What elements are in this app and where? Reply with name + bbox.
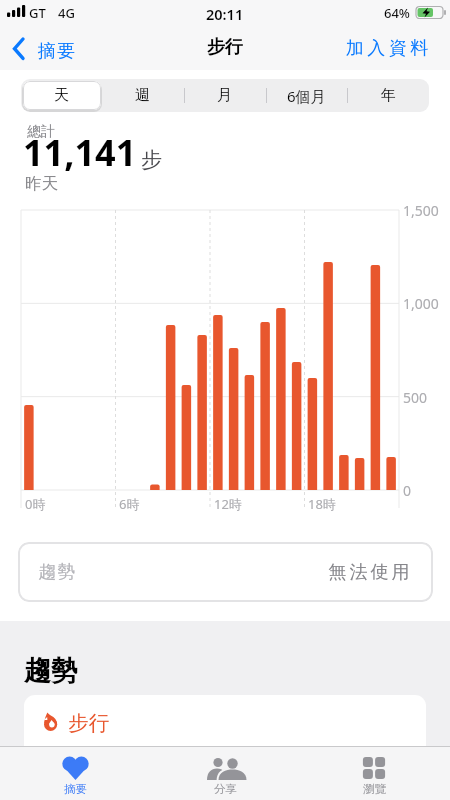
- button[interactable]: 月: [183, 79, 265, 112]
- staticText: 加入資料: [344, 37, 430, 60]
- staticText: 摘要: [64, 782, 87, 796]
- staticText: 週: [135, 86, 150, 105]
- staticText: 0時: [25, 495, 46, 513]
- button[interactable]: [24, 695, 426, 747]
- staticText: 6個月: [287, 86, 326, 106]
- staticText: 64%: [384, 4, 410, 22]
- button[interactable]: 6個月: [265, 79, 347, 112]
- staticText: 趨勢: [38, 561, 76, 584]
- staticText: 分享: [214, 782, 237, 796]
- staticText: 4G: [58, 4, 75, 22]
- staticText: 摘要: [37, 40, 76, 63]
- button[interactable]: 摘要: [15, 747, 136, 800]
- button[interactable]: 年: [347, 79, 429, 112]
- button[interactable]: 天: [21, 79, 102, 112]
- staticText: 11,141: [23, 128, 137, 177]
- staticText: 6時: [119, 495, 140, 513]
- staticText: 無法使用: [327, 561, 411, 584]
- staticText: 12時: [214, 495, 242, 513]
- button[interactable]: 摘要: [6, 34, 76, 64]
- staticText: 18時: [308, 495, 336, 513]
- staticText: 0: [403, 481, 412, 500]
- staticText: 瀏覽: [363, 782, 386, 796]
- button[interactable]: 瀏覽: [314, 747, 435, 800]
- staticText: 天: [54, 86, 69, 105]
- button[interactable]: 趨勢: [18, 542, 433, 602]
- button[interactable]: 分享: [165, 747, 286, 800]
- button[interactable]: 週: [102, 79, 183, 112]
- staticText: 步行: [207, 36, 243, 59]
- staticText: 步: [141, 147, 162, 173]
- staticText: 1,000: [403, 294, 439, 313]
- staticText: 總計: [27, 123, 55, 141]
- staticText: GT: [29, 4, 46, 22]
- staticText: 1,500: [403, 201, 439, 220]
- staticText: 年: [381, 86, 396, 105]
- staticText: 500: [403, 388, 428, 407]
- staticText: 20:11: [206, 4, 244, 24]
- staticText: 月: [217, 86, 232, 105]
- staticText: 步行: [68, 710, 109, 736]
- staticText: 趨勢: [24, 654, 78, 688]
- button[interactable]: 加入資料: [320, 33, 440, 63]
- staticText: 昨天: [25, 173, 58, 194]
